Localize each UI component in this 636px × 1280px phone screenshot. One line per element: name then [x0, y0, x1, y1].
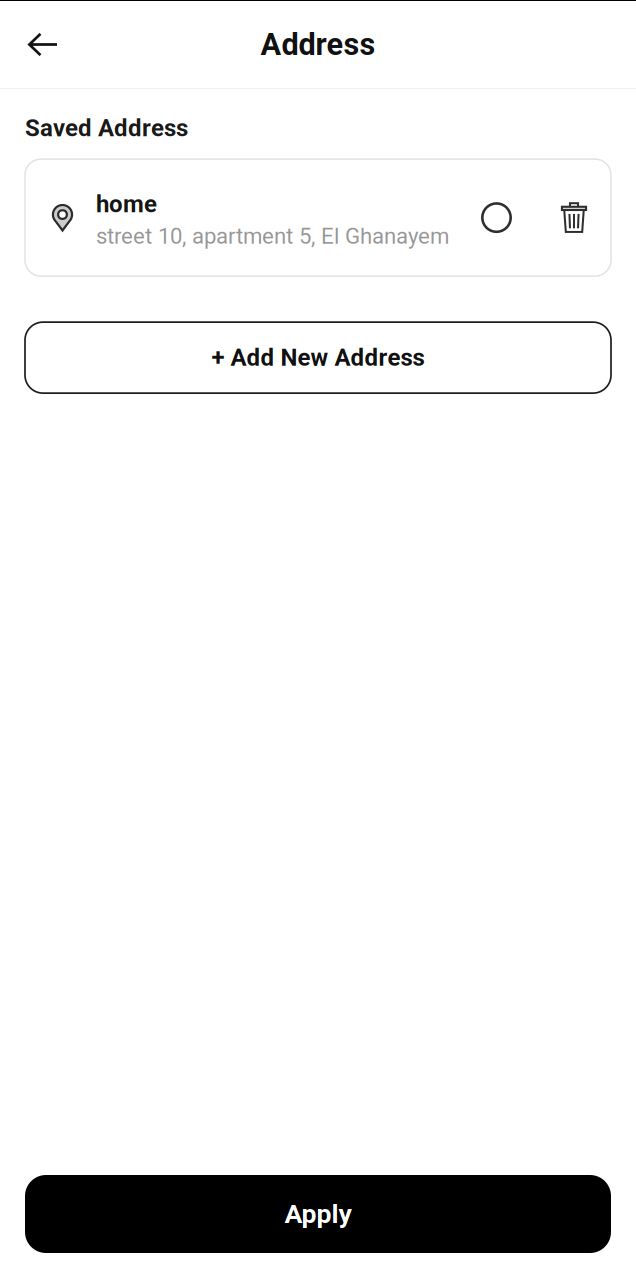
- staticText: Apply: [284, 1198, 351, 1230]
- button[interactable]: Delete address: [532, 184, 611, 251]
- staticText: home: [96, 190, 157, 218]
- staticText: Saved Address: [25, 114, 188, 142]
- button[interactable]: + Add New Address: [25, 322, 611, 393]
- button[interactable]: Back: [0, 16, 75, 72]
- staticText: Address: [260, 26, 375, 62]
- staticText: + Add New Address: [211, 344, 424, 372]
- button[interactable]: Apply: [25, 1175, 611, 1253]
- staticText: street 10, apartment 5, El Ghanayem: [96, 223, 449, 249]
- button[interactable]: home: [25, 159, 611, 276]
- button[interactable]: Select address: [472, 184, 532, 251]
